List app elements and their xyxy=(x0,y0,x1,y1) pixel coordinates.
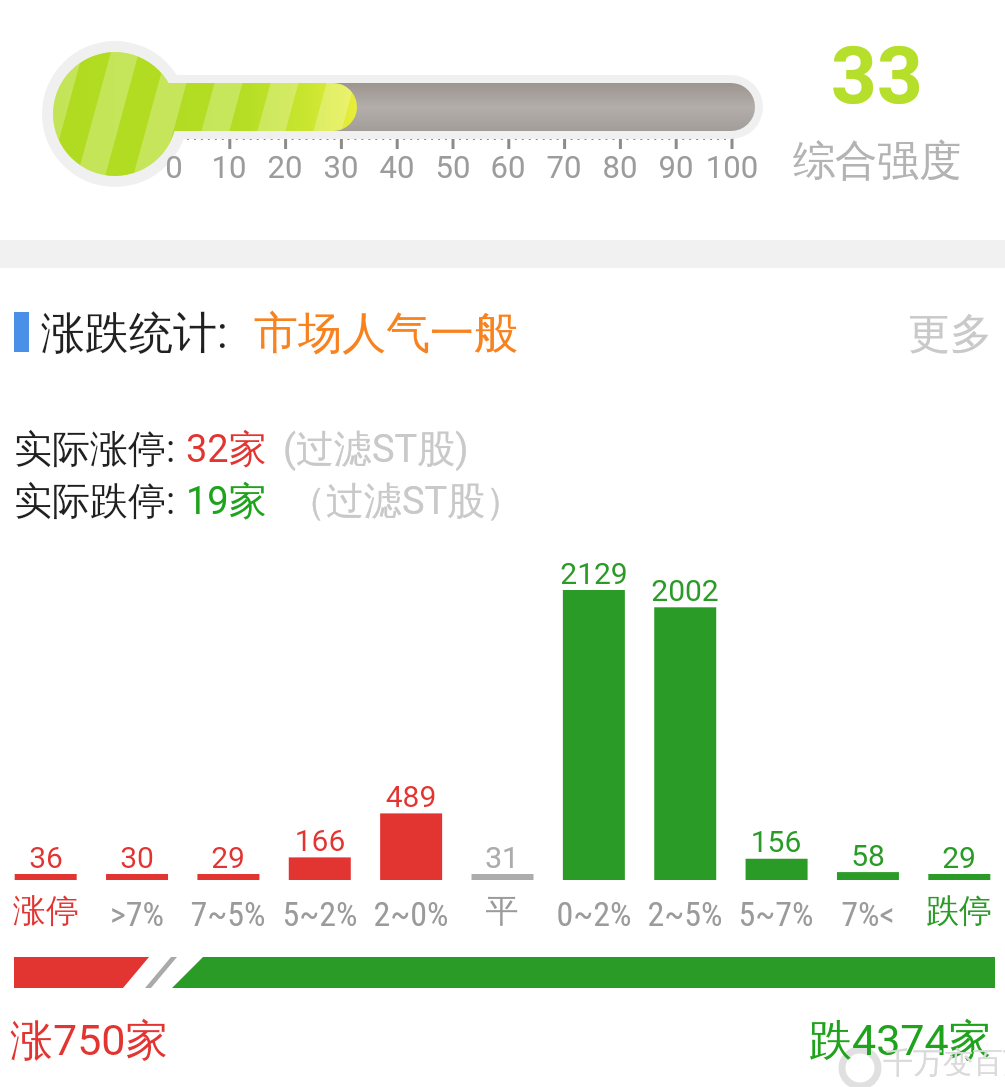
staticText: 29 xyxy=(913,840,1005,875)
staticText: 市场人气一般 xyxy=(254,306,518,361)
staticText: 70 xyxy=(524,149,604,185)
staticText: 50 xyxy=(413,149,493,185)
staticText: 100 xyxy=(692,149,772,185)
staticText: 7~5% xyxy=(182,894,274,934)
staticText: 90 xyxy=(636,149,716,185)
staticText: 跌停 xyxy=(913,890,1005,932)
staticText: 20 xyxy=(245,149,325,185)
staticText: 5~2% xyxy=(274,894,366,934)
staticText: 2~5% xyxy=(639,894,731,934)
staticText: 29 xyxy=(182,840,274,875)
staticText: 10 xyxy=(189,149,269,185)
staticText: 30 xyxy=(91,840,183,875)
staticText: 30 xyxy=(301,149,381,185)
staticText: 40 xyxy=(357,149,437,185)
staticText: 涨750家 xyxy=(10,1014,169,1068)
staticText: 实际涨停: xyxy=(14,425,176,473)
staticText: 跌4374家 xyxy=(809,1014,992,1068)
button[interactable]: 涨跌统计: xyxy=(41,306,228,361)
staticText: 0 xyxy=(134,149,214,185)
staticText: 156 xyxy=(730,824,822,859)
staticText: 31 xyxy=(456,840,548,875)
staticText: 5~7% xyxy=(730,894,822,934)
staticText: 80 xyxy=(580,149,660,185)
staticText: 涨停 xyxy=(0,890,92,932)
staticText: 2129 xyxy=(548,556,640,591)
staticText: 58 xyxy=(822,838,914,873)
staticText: 33 xyxy=(752,29,1002,123)
staticText: （过滤ST股） xyxy=(288,477,524,525)
staticText: 2002 xyxy=(639,573,731,608)
staticText: 0~2% xyxy=(548,894,640,934)
staticText: 7%< xyxy=(822,894,914,934)
staticText: 平 xyxy=(456,890,548,932)
staticText: 60 xyxy=(468,149,548,185)
staticText: 489 xyxy=(365,779,457,814)
staticText: >7% xyxy=(91,894,183,934)
button[interactable]: 更多 xyxy=(908,308,992,361)
staticText: 综合强度 xyxy=(752,135,1002,188)
staticText: 166 xyxy=(274,823,366,858)
staticText: 32家 xyxy=(186,425,267,473)
staticText: (过滤ST股) xyxy=(283,425,469,473)
staticText: 2~0% xyxy=(365,894,457,934)
staticText: 36 xyxy=(0,840,92,875)
staticText: 19家 xyxy=(186,477,267,525)
staticText: 千万变百万 xyxy=(883,1044,1005,1082)
staticText: 实际跌停: xyxy=(14,477,176,525)
